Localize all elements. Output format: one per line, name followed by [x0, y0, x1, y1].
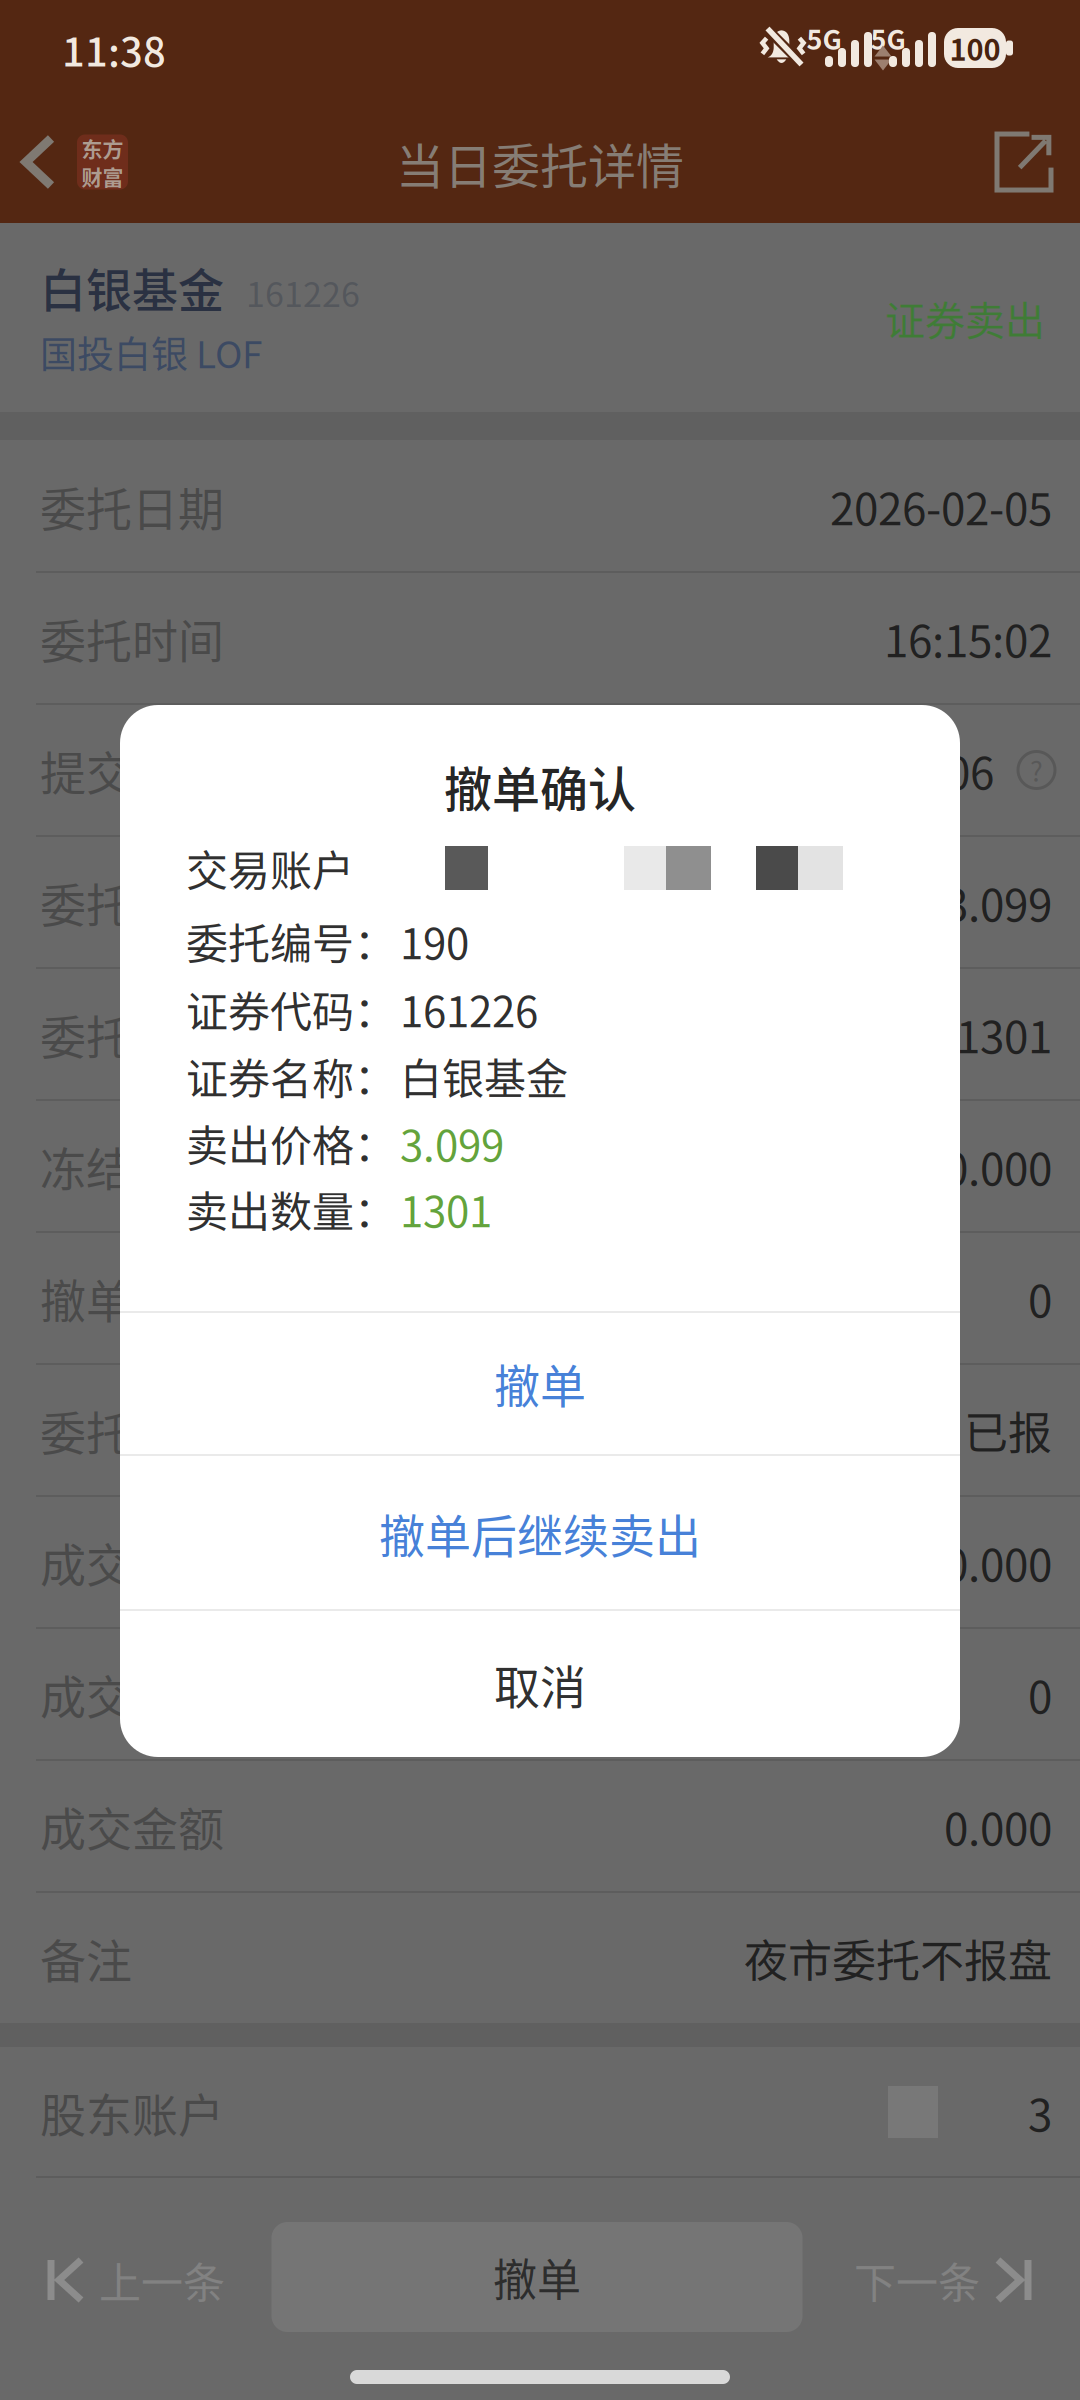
button[interactable]: 下一条 [854, 2250, 1028, 2310]
staticText: 撤单后继续卖出 [379, 1500, 701, 1566]
staticText: 下一条 [854, 2250, 980, 2310]
staticText: 0 [1028, 1266, 1052, 1330]
staticText: 2026-02-05 [830, 474, 1052, 538]
staticText: 100 [949, 27, 1000, 69]
staticText: 3.099 [944, 870, 1052, 934]
staticText: 冻结金额 [40, 1133, 224, 1199]
staticText: 夜市委托不报盘 [744, 1926, 1052, 1990]
staticText: 委托价格 [40, 869, 224, 935]
button[interactable]: 帮助 [1018, 750, 1055, 790]
staticText: 0.000 [944, 1134, 1052, 1198]
staticText: 3.099 [400, 1113, 504, 1173]
staticText: 证券卖出 [885, 289, 1045, 347]
staticText: 卖出价格： [186, 1113, 396, 1173]
staticText: 上一条 [99, 2250, 225, 2310]
staticText: 1301 [956, 1002, 1052, 1066]
button[interactable]: 撤单后继续卖出 [120, 1456, 960, 1609]
staticText: 委托状态 [40, 1397, 224, 1463]
staticText: 委托日期 [40, 473, 224, 539]
staticText: 国投白银 LOF [40, 325, 262, 379]
staticText: 0 [1028, 1662, 1052, 1726]
staticText: 取消 [494, 1651, 586, 1717]
staticText: 成交数量 [40, 1661, 224, 1727]
staticText: 成交价格 [40, 1529, 224, 1595]
staticText: 11:37:06 [826, 738, 994, 802]
staticText: 委托时间 [40, 605, 224, 671]
staticText: 已报 [964, 1398, 1052, 1462]
staticText: ? [1030, 750, 1043, 790]
staticText: 成交金额 [40, 1793, 224, 1859]
staticText: 当日委托详情 [396, 128, 684, 198]
staticText: 5G [870, 18, 905, 58]
staticText: 1301 [400, 1179, 492, 1239]
button[interactable]: 返回 [26, 133, 128, 191]
staticText: 撤单 [493, 2245, 581, 2309]
staticText: 3 [1028, 2080, 1052, 2144]
staticText: 0.000 [944, 1530, 1052, 1594]
staticText: 5G [806, 18, 841, 58]
button[interactable]: 上一条 [51, 2250, 225, 2310]
staticText: 白银基金 [40, 254, 224, 320]
staticText: 161226 [246, 268, 360, 317]
button[interactable]: 分享 [997, 134, 1051, 190]
staticText: 东方 [81, 133, 123, 163]
staticText: 股东账户 [40, 2079, 224, 2145]
staticText: 财富 [81, 161, 123, 191]
staticText: 证券代码： [186, 979, 396, 1039]
staticText: 161226 [400, 979, 538, 1039]
staticText: 16:15:02 [884, 606, 1052, 670]
staticText: 0.000 [944, 1794, 1052, 1858]
staticText: 证券名称： [186, 1046, 396, 1106]
staticText: 提交时间 [40, 737, 224, 803]
staticText: 委托数量 [40, 1001, 224, 1067]
staticText: 撤单确认 [444, 751, 636, 821]
staticText: 备注 [40, 1925, 132, 1991]
staticText: 白银基金 [400, 1046, 568, 1106]
button[interactable]: 撤单 [120, 1312, 960, 1453]
staticText: 190 [400, 911, 469, 971]
button[interactable]: 撤单 [271, 2222, 802, 2332]
staticText: 11:38 [62, 20, 166, 78]
button[interactable]: 取消 [120, 1611, 960, 1756]
staticText: 卖出数量： [186, 1179, 396, 1239]
staticText: 交易账户 [186, 838, 354, 898]
staticText: 委托编号： [186, 911, 396, 971]
staticText: 撤单 [494, 1350, 586, 1416]
staticText: 撤单数量 [40, 1265, 224, 1331]
